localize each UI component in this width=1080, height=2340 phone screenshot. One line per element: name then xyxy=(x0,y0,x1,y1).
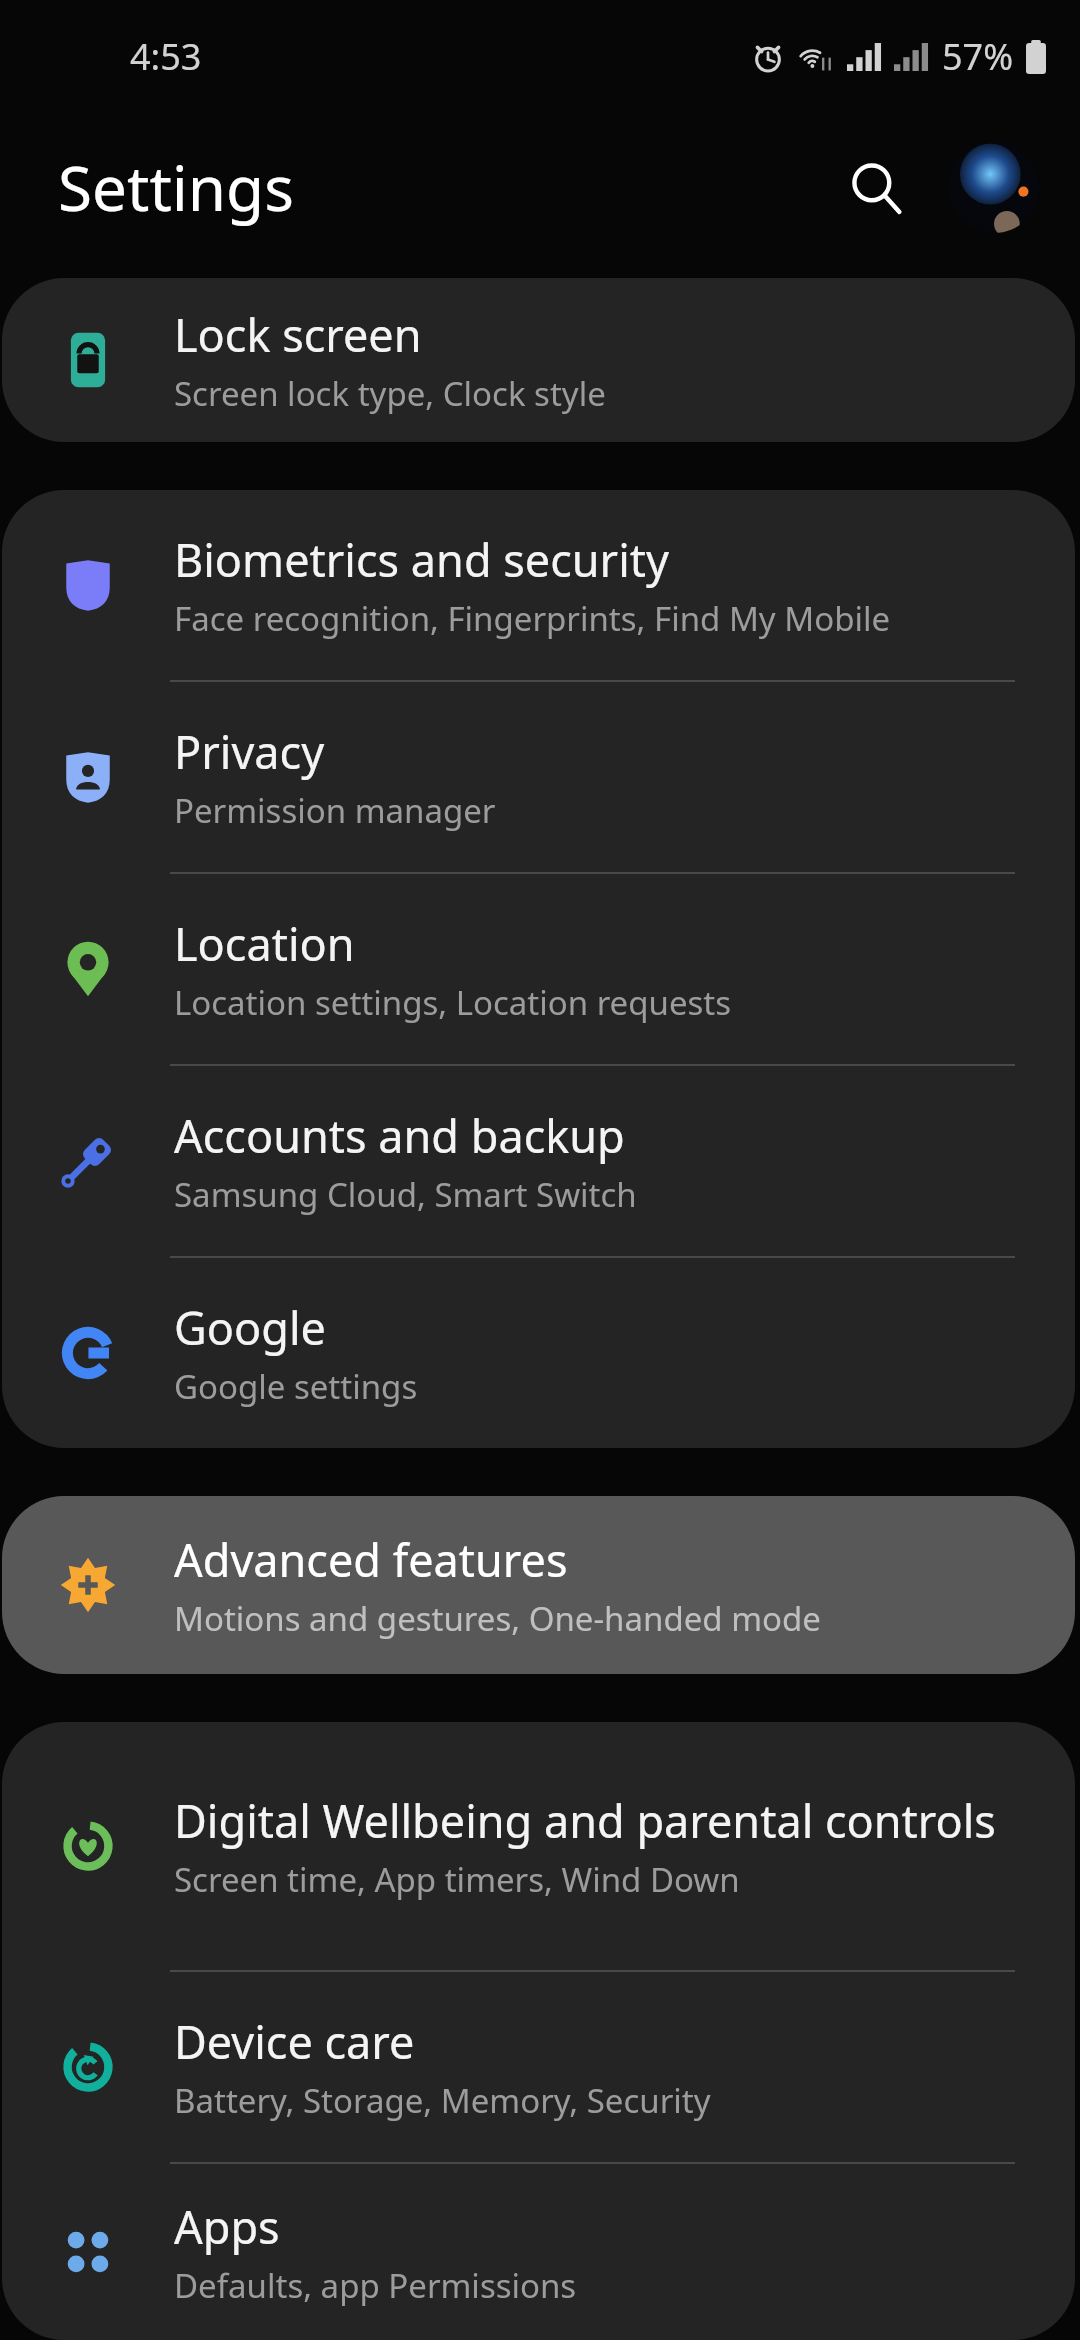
staticText: Accounts and backup xyxy=(174,1105,625,1166)
staticText: Privacy xyxy=(174,721,325,782)
staticText: Apps xyxy=(174,2196,280,2257)
button[interactable]: Apps xyxy=(2,2164,1075,2340)
button[interactable]: Location xyxy=(2,874,1075,1064)
staticText: Digital Wellbeing and parental controls xyxy=(174,1790,996,1851)
staticText: Location xyxy=(174,913,355,974)
staticText: Advanced features xyxy=(174,1529,568,1590)
button[interactable]: Device care xyxy=(2,1972,1075,2162)
staticText: Google settings xyxy=(174,1364,418,1409)
staticText: Settings xyxy=(58,145,294,229)
staticText: Defaults, app Permissions xyxy=(174,2263,577,2308)
staticText: Motions and gestures, One-handed mode xyxy=(174,1596,821,1641)
staticText: Battery, Storage, Memory, Security xyxy=(174,2078,711,2123)
button[interactable]: Privacy xyxy=(2,682,1075,872)
staticText: Biometrics and security xyxy=(174,529,670,590)
staticText: Lock screen xyxy=(174,304,422,365)
button[interactable]: Profile xyxy=(948,141,1040,233)
staticText: Device care xyxy=(174,2011,415,2072)
staticText: Samsung Cloud, Smart Switch xyxy=(174,1172,637,1217)
button[interactable]: Search xyxy=(826,137,926,237)
staticText: Permission manager xyxy=(174,788,496,833)
button[interactable]: Google xyxy=(2,1258,1075,1448)
staticText: Screen lock type, Clock style xyxy=(174,371,606,416)
button[interactable]: Lock screen xyxy=(2,278,1075,442)
button[interactable]: Accounts and backup xyxy=(2,1066,1075,1256)
staticText: Location settings, Location requests xyxy=(174,980,732,1025)
button[interactable]: Advanced features xyxy=(2,1496,1075,1674)
button[interactable]: Digital Wellbeing and parental controls xyxy=(2,1722,1075,1970)
staticText: 57% xyxy=(942,32,1014,81)
staticText: Face recognition, Fingerprints, Find My … xyxy=(174,596,891,641)
button[interactable]: Biometrics and security xyxy=(2,490,1075,680)
staticText: 4:53 xyxy=(130,32,202,81)
staticText: Screen time, App timers, Wind Down xyxy=(174,1857,740,1902)
staticText: Google xyxy=(174,1297,326,1358)
